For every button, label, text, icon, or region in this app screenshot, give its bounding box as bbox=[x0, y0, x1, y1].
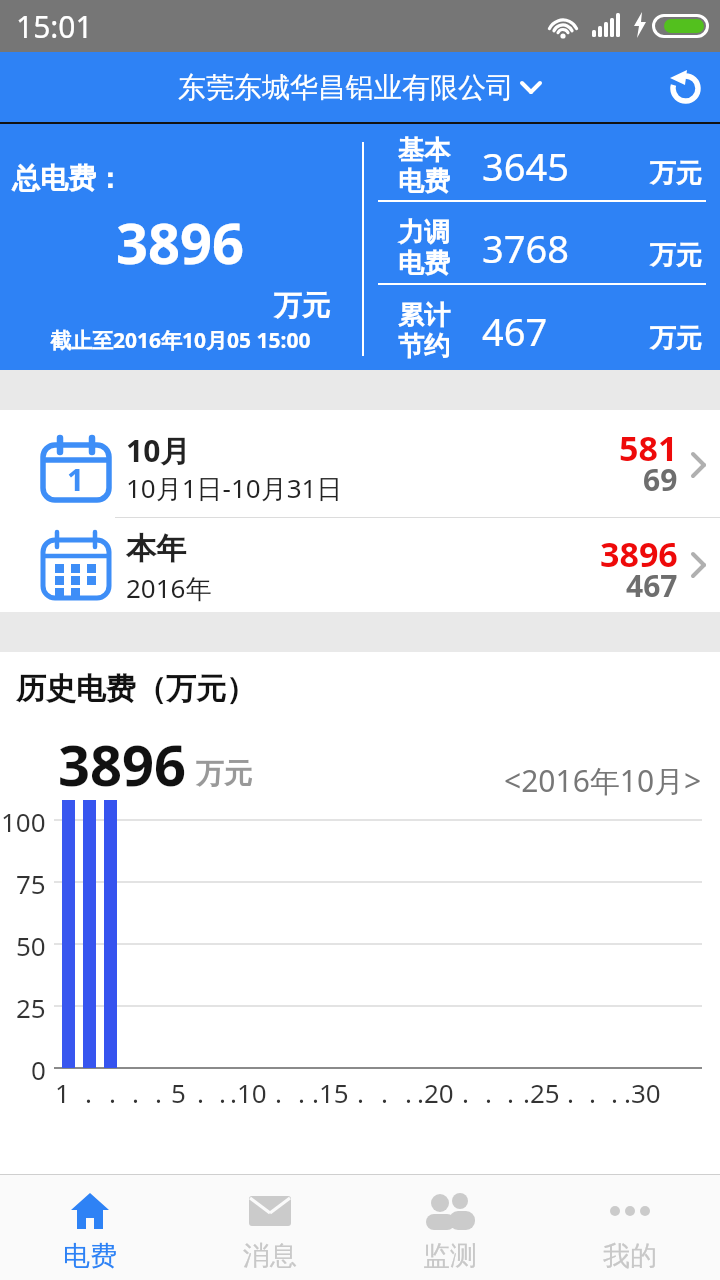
staticText: . bbox=[567, 1075, 574, 1110]
staticText: 0 bbox=[31, 1052, 46, 1087]
staticText: 万元 bbox=[650, 157, 702, 190]
staticText: <2016年10月> bbox=[504, 760, 702, 801]
staticText: 467 bbox=[482, 305, 548, 357]
staticText: . bbox=[405, 1075, 412, 1110]
staticText: 本年 bbox=[126, 530, 186, 568]
button[interactable]: <2016年10月> bbox=[0, 760, 702, 801]
staticText: 5 bbox=[171, 1075, 186, 1110]
staticText: 1 bbox=[55, 1075, 70, 1110]
staticText: 3896 bbox=[600, 531, 678, 577]
staticText: .15 bbox=[312, 1075, 349, 1110]
staticText: 2016年 bbox=[126, 570, 212, 606]
button[interactable]: 电费 bbox=[0, 1175, 180, 1280]
staticText: . bbox=[589, 1075, 596, 1110]
staticText: 万元 bbox=[650, 239, 702, 272]
button[interactable]: 监测 bbox=[360, 1175, 540, 1280]
button[interactable]: 我的 bbox=[540, 1175, 720, 1280]
staticText: 50 bbox=[16, 928, 46, 963]
staticText: . bbox=[611, 1075, 618, 1110]
staticText: . bbox=[298, 1075, 305, 1110]
staticText: .25 bbox=[523, 1075, 560, 1110]
staticText: .20 bbox=[417, 1075, 454, 1110]
staticText: 1 bbox=[67, 459, 85, 500]
staticText: . bbox=[381, 1075, 388, 1110]
staticText: . bbox=[109, 1075, 116, 1110]
staticText: 75 bbox=[16, 866, 46, 901]
staticText: . bbox=[462, 1075, 469, 1110]
staticText: 电费 bbox=[63, 1239, 117, 1273]
staticText: 3645 bbox=[482, 140, 569, 192]
staticText: 15:01 bbox=[16, 6, 93, 47]
button[interactable]: 东莞东城华昌铝业有限公司 bbox=[178, 70, 542, 105]
staticText: 我的 bbox=[603, 1239, 657, 1273]
staticText: 万元 bbox=[650, 322, 702, 355]
staticText: 100 bbox=[1, 804, 46, 839]
staticText: 监测 bbox=[423, 1239, 477, 1273]
staticText: . bbox=[197, 1075, 204, 1110]
staticText: 力调 电费 bbox=[398, 216, 450, 280]
staticText: .30 bbox=[624, 1075, 661, 1110]
staticText: 25 bbox=[16, 990, 46, 1025]
staticText: 69 bbox=[643, 459, 678, 500]
staticText: 3896 bbox=[116, 204, 245, 280]
staticText: 基本 电费 bbox=[398, 134, 450, 198]
staticText: . bbox=[485, 1075, 492, 1110]
staticText: 历史电费（万元） bbox=[16, 670, 256, 708]
staticText: . bbox=[132, 1075, 139, 1110]
staticText: 截止至2016年10月05 15:00 bbox=[50, 326, 311, 355]
staticText: . bbox=[85, 1075, 92, 1110]
button[interactable] bbox=[666, 69, 702, 105]
staticText: .10 bbox=[230, 1075, 267, 1110]
staticText: . bbox=[357, 1075, 364, 1110]
staticText: 3768 bbox=[482, 222, 569, 274]
staticText: . bbox=[507, 1075, 514, 1110]
staticText: 总电费： bbox=[12, 161, 124, 196]
staticText: . bbox=[219, 1075, 226, 1110]
staticText: . bbox=[275, 1075, 282, 1110]
staticText: 10月1日-10月31日 bbox=[126, 470, 343, 506]
button[interactable]: 本年 bbox=[0, 518, 720, 612]
staticText: 消息 bbox=[243, 1239, 297, 1273]
staticText: 累计 节约 bbox=[398, 299, 450, 363]
staticText: . bbox=[155, 1075, 162, 1110]
button[interactable]: 1 bbox=[0, 410, 720, 517]
staticText: 万元 bbox=[196, 756, 252, 791]
staticText: 467 bbox=[626, 565, 678, 606]
button[interactable]: 消息 bbox=[180, 1175, 360, 1280]
staticText: 3896 bbox=[58, 726, 187, 802]
staticText: 10月 bbox=[126, 430, 191, 471]
staticText: 581 bbox=[619, 425, 678, 471]
staticText: 东莞东城华昌铝业有限公司 bbox=[178, 70, 514, 105]
staticText: 万元 bbox=[274, 288, 330, 323]
